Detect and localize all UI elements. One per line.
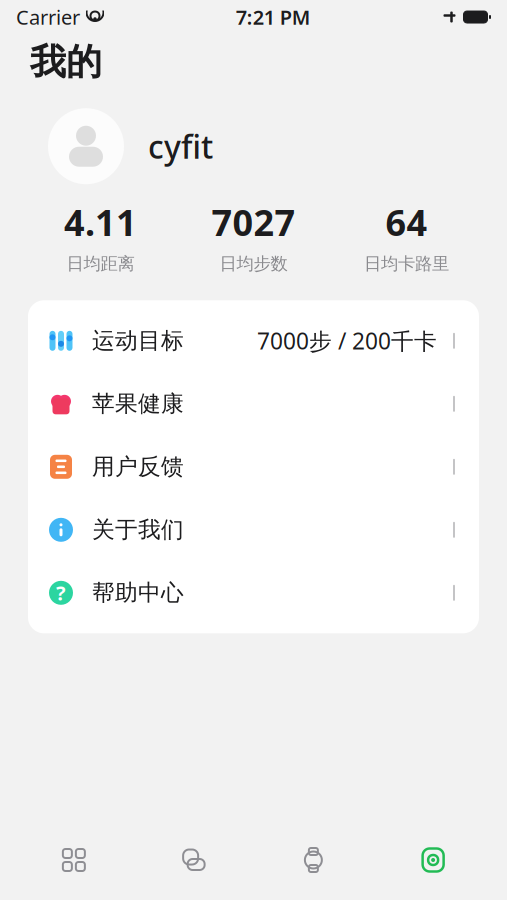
button[interactable]: 首页 — [14, 832, 134, 888]
button[interactable]: 苹果健康 — [28, 372, 479, 435]
staticText: 64 — [385, 198, 427, 246]
staticText: 日均距离 — [66, 253, 134, 274]
button[interactable]: ? — [28, 561, 479, 624]
button[interactable]: 用户反馈 — [28, 435, 479, 498]
staticText: 7:21 PM — [236, 4, 311, 30]
button[interactable]: 设备 — [253, 832, 373, 888]
staticText: 关于我们 — [92, 516, 184, 544]
staticText: 运动目标 — [92, 327, 184, 355]
staticText: cyfit — [148, 125, 213, 167]
button[interactable]: 我的 — [373, 832, 493, 888]
button[interactable]: 运动目标 — [28, 309, 479, 372]
staticText: ? — [56, 579, 66, 606]
staticText: 4.11 — [64, 198, 137, 246]
staticText: 日均卡路里 — [364, 253, 449, 274]
button[interactable]: 运动 — [134, 832, 254, 888]
staticText: 7000步 / 200千卡 — [257, 326, 437, 356]
button[interactable]: 关于我们 — [28, 498, 479, 561]
staticText: Carrier — [16, 4, 80, 30]
staticText: 帮助中心 — [92, 579, 184, 607]
staticText: 苹果健康 — [92, 390, 184, 418]
staticText: 用户反馈 — [92, 453, 184, 481]
staticText: 日均步数 — [219, 253, 287, 274]
staticText: 7027 — [211, 198, 295, 246]
staticText: 我的 — [30, 40, 102, 84]
